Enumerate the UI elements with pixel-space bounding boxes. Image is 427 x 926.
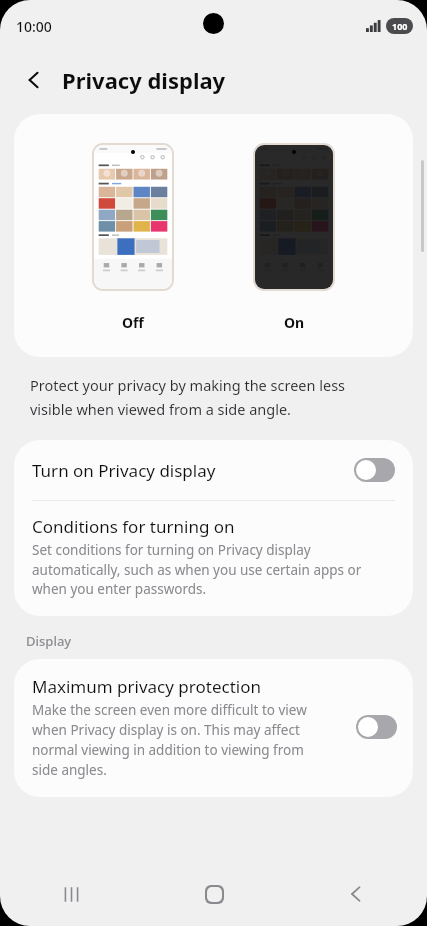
staticText: Privacy display [62,65,226,95]
button[interactable]: Toggle [356,715,397,739]
staticText: Protect your privacy by making the scree… [30,375,346,419]
staticText: On [284,313,305,332]
staticText: Conditions for turning on [32,515,235,538]
staticText: Maximum privacy protection [32,675,261,698]
staticText: Display [26,632,72,650]
button[interactable]: Toggle [354,458,395,482]
button[interactable]: Back [14,60,54,100]
button[interactable]: Back [285,862,427,926]
staticText: 10:00 [16,17,52,36]
button[interactable]: Conditions for turning on [14,501,413,616]
button[interactable]: Turn on Privacy display [14,440,413,500]
button[interactable]: Home [143,862,285,926]
button[interactable]: Recent apps [0,862,143,926]
button[interactable]: Maximum privacy protection [14,659,413,797]
staticText: Set conditions for turning on Privacy di… [32,541,362,598]
staticText: 100 [392,20,408,32]
staticText: Off [122,313,144,332]
staticText: Make the screen even more difficult to v… [32,701,307,779]
staticText: Turn on Privacy display [32,459,354,482]
